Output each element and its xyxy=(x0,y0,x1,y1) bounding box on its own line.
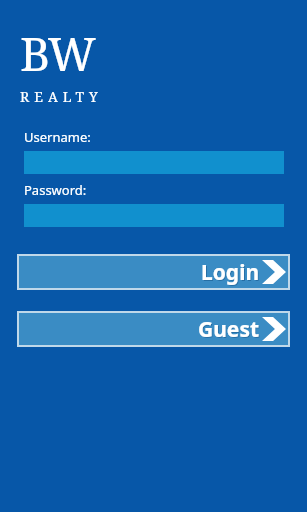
button[interactable]: Guest xyxy=(19,313,288,345)
staticText: Guest xyxy=(199,316,261,345)
staticText: BW xyxy=(20,22,95,85)
staticText: Login xyxy=(201,258,260,287)
staticText: REALTY xyxy=(20,87,103,106)
staticText: Guest xyxy=(198,315,260,344)
button[interactable]: Login xyxy=(19,256,288,288)
staticText: Username: xyxy=(24,128,91,146)
staticText: Password: xyxy=(24,181,87,199)
staticText: Login xyxy=(202,259,261,288)
